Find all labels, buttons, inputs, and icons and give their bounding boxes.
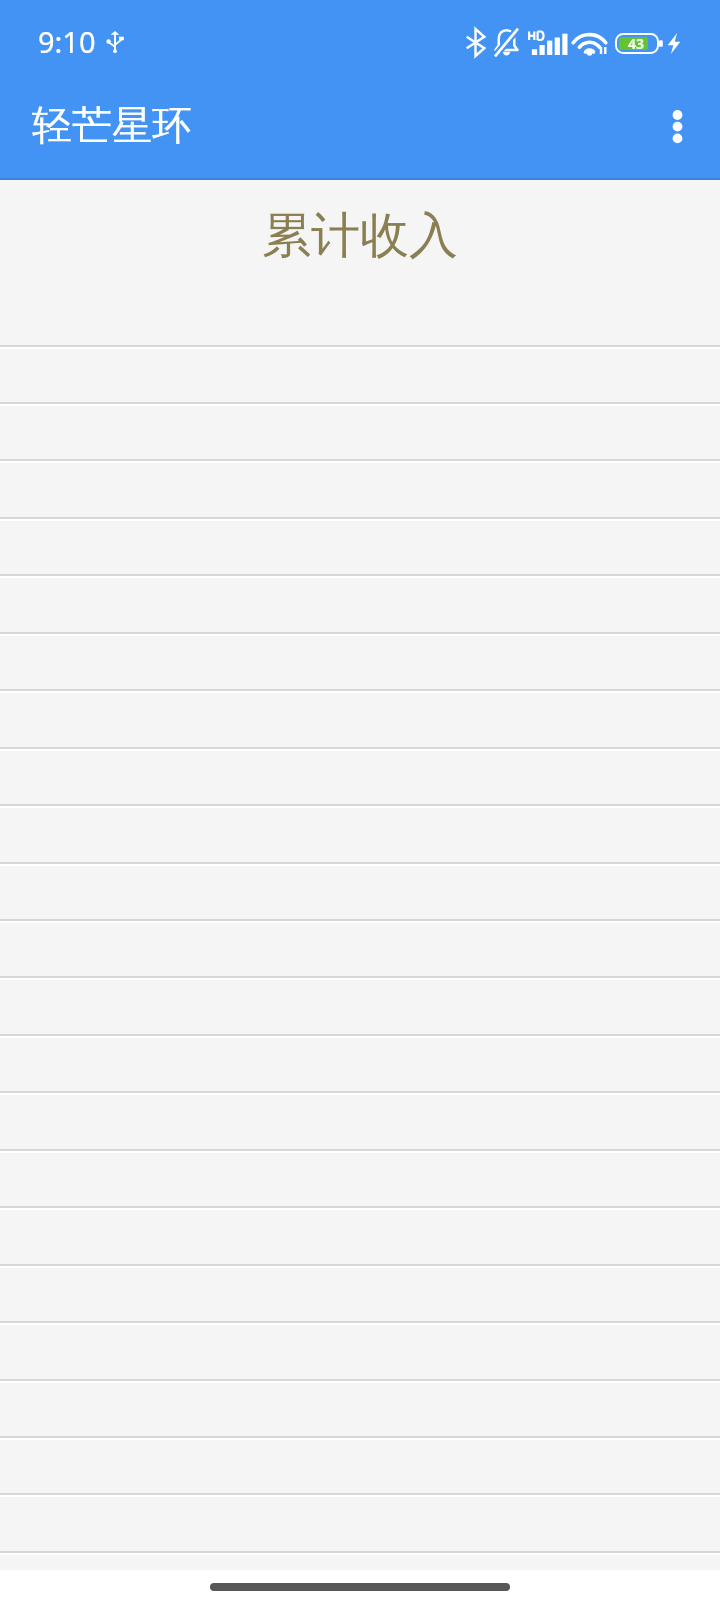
other: Home gesture bar xyxy=(210,1583,510,1591)
staticText: 累计收入 xyxy=(262,205,458,267)
button[interactable] xyxy=(0,403,720,460)
button[interactable] xyxy=(0,748,720,805)
button[interactable] xyxy=(0,575,720,633)
staticText: 9:10 xyxy=(38,22,96,61)
button[interactable] xyxy=(0,1265,720,1322)
other: Ringer silenced xyxy=(494,28,519,57)
button[interactable] xyxy=(0,1035,720,1092)
button[interactable] xyxy=(0,1437,720,1494)
button[interactable] xyxy=(0,690,720,748)
button[interactable] xyxy=(0,633,720,690)
other: Mobile signal full xyxy=(528,31,565,55)
button[interactable] xyxy=(0,1494,720,1552)
button[interactable] xyxy=(0,977,720,1035)
button[interactable] xyxy=(0,460,720,518)
other: Battery 43 percent, charging xyxy=(615,33,681,54)
staticText: 43 xyxy=(628,34,645,53)
button[interactable] xyxy=(0,518,720,575)
button[interactable] xyxy=(0,1092,720,1150)
button[interactable] xyxy=(0,1552,720,1602)
other: Wi-Fi connected xyxy=(573,30,608,55)
button[interactable] xyxy=(0,805,720,863)
button[interactable] xyxy=(0,1150,720,1207)
button[interactable] xyxy=(0,863,720,920)
button[interactable] xyxy=(0,1380,720,1437)
button[interactable] xyxy=(0,1207,720,1265)
button[interactable]: More options xyxy=(647,98,709,160)
staticText: 轻芒星环 xyxy=(32,100,192,150)
button[interactable] xyxy=(0,920,720,977)
button[interactable] xyxy=(0,1322,720,1380)
other: Bluetooth on xyxy=(465,29,486,56)
other: USB connected xyxy=(105,31,125,53)
button[interactable] xyxy=(0,346,720,403)
